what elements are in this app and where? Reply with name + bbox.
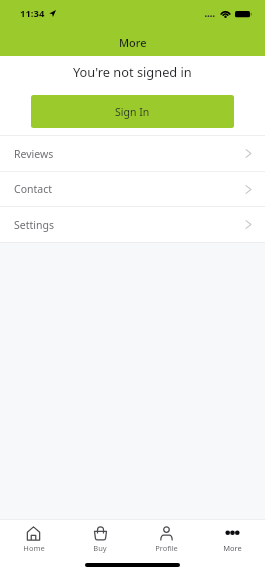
button[interactable]: Sign In [31,95,234,128]
other: Buy [93,526,108,541]
staticText: More [119,35,147,50]
staticText: More [223,543,242,553]
staticText: Contact [14,182,52,196]
button[interactable]: Settings [0,207,265,242]
other: Profile [159,526,174,541]
staticText: Home [23,543,45,553]
button[interactable]: Contact [0,172,265,206]
staticText: Buy [93,543,107,553]
button[interactable]: Home [0,520,67,555]
staticText: Reviews [14,147,54,161]
staticText: Settings [14,218,54,232]
button[interactable]: More [199,520,265,555]
button[interactable]: Reviews [0,136,265,171]
staticText: You're not signed in [73,63,192,80]
button[interactable]: Profile [133,520,199,555]
button[interactable]: Buy [67,520,133,555]
other: More [225,526,240,541]
staticText: 11:34 [20,7,45,20]
staticText: Profile [155,543,178,553]
staticText: Sign In [115,105,150,119]
other: Home [26,526,41,541]
